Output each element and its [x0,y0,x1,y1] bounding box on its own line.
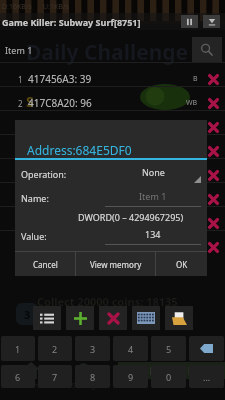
button[interactable]: Search [192,37,222,62]
staticText: S [26,92,34,111]
button[interactable]: Minimize [203,15,220,28]
staticText: 417456A3: 39 [28,72,193,86]
button[interactable]: OK [156,252,207,276]
staticText: 1 [15,343,21,355]
staticText: Value: [21,230,47,242]
staticText: B [193,74,198,84]
staticText: 5 [166,343,172,355]
button[interactable]: Backspace [189,336,224,361]
button[interactable]: View memory [76,252,155,276]
staticText: WB [186,98,198,108]
button[interactable]: Delete [202,164,224,186]
staticText: 0 [166,371,172,383]
button[interactable]: Clear [99,306,127,330]
staticText: RESUME [149,363,194,378]
button[interactable]: Delete [0,115,225,139]
button[interactable]: 1 [1,336,35,361]
staticText: Operation: [21,168,67,180]
button[interactable]: 0 [151,365,186,388]
button[interactable]: 2 [0,91,225,115]
button[interactable]: Files [165,306,193,330]
staticText: 9 [128,371,134,383]
button[interactable]: Delete [202,140,224,162]
staticText: 8 [90,371,96,383]
button[interactable]: None [105,164,201,183]
staticText: Item 1 [5,44,33,56]
button[interactable]: Keyboard [132,306,160,330]
staticText: OK [176,259,188,270]
button[interactable]: 3 [75,336,110,361]
button[interactable]: 2 [38,336,72,361]
staticText: 3 [90,343,96,355]
staticText: 417C8A20: 96 [28,96,186,110]
button[interactable]: Delete [0,163,225,187]
button[interactable]: Cancel [15,252,75,276]
button[interactable]: Pause [181,15,198,28]
button[interactable]: 6 [1,365,35,388]
button[interactable]: Delete [202,68,224,90]
staticText: U:1KB/s [43,2,69,12]
button[interactable]: Delete [0,187,225,211]
button[interactable]: Delete [202,116,224,138]
staticText: None [142,166,165,178]
button[interactable]: Delete [202,188,224,210]
staticText: Name: [21,192,49,204]
button[interactable]: 134 [105,226,201,245]
button[interactable]: Delete [0,235,225,259]
button[interactable]: 7 [38,365,72,388]
staticText: Item 1 [139,190,167,202]
staticText: Home [22,381,42,391]
staticText: 2 [52,343,58,355]
button[interactable]: Delete [202,236,224,258]
button[interactable]: Delete [0,211,225,235]
staticText: Collect 20000 coins: 18135 [37,294,178,309]
staticText: Settings [72,381,99,391]
button[interactable]: 9 [113,365,148,388]
staticText: Game Killer: Subway Surf[8751] [2,16,181,28]
staticText: Cancel [33,259,58,270]
button[interactable]: Delete [0,139,225,163]
staticText: Address:684E5DF0 [27,142,132,158]
button[interactable]: 4 [113,336,148,361]
staticText: 1 [18,74,23,85]
staticText: ... [203,371,211,383]
staticText: 2 [18,98,23,109]
button[interactable]: 1 [0,67,225,91]
staticText: Daily Challenge [26,38,189,67]
staticText: 4 [128,343,134,355]
button[interactable]: 8 [75,365,110,388]
button[interactable]: Delete [202,92,224,114]
button[interactable]: Add [66,306,94,330]
staticText: DWORD(0 – 4294967295) [78,211,184,223]
staticText: View memory [90,259,142,270]
button[interactable]: Item 1 [105,188,201,207]
button[interactable]: 5 [151,336,186,361]
staticText: 134 [145,228,161,240]
button[interactable]: List [33,306,61,330]
button[interactable]: ... [189,365,224,388]
button[interactable]: Delete [202,212,224,234]
staticText: 7 [52,371,58,383]
staticText: 6 [15,371,21,383]
staticText: D:16KB/s [2,2,32,12]
staticText: 3 [24,307,31,322]
